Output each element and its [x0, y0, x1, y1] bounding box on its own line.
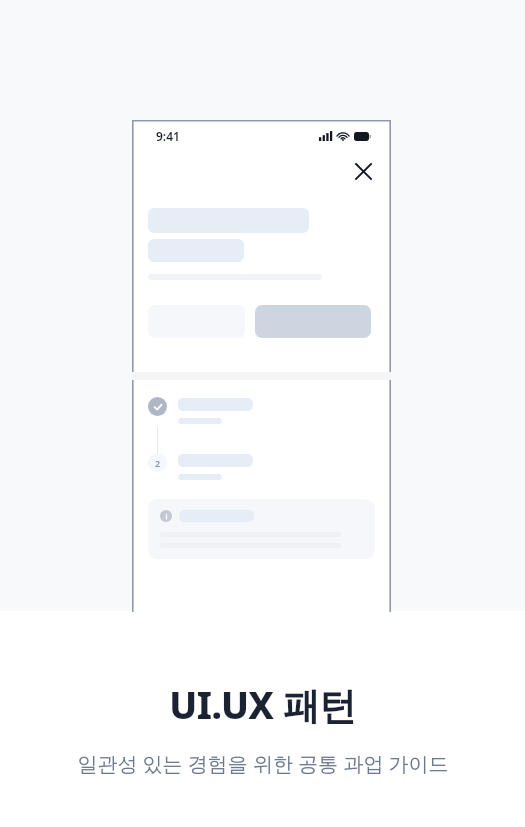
- button[interactable]: [148, 499, 375, 559]
- staticText: UI.UX 패턴: [169, 679, 356, 730]
- staticText: 일관성 있는 경험을 위한 공통 과업 가이드: [77, 750, 449, 777]
- button[interactable]: Close: [349, 157, 377, 185]
- staticText: 2: [155, 457, 161, 469]
- button[interactable]: [148, 397, 391, 424]
- staticText: 9:41: [156, 128, 180, 144]
- button[interactable]: Primary action: [255, 305, 371, 338]
- button[interactable]: 2: [148, 453, 391, 480]
